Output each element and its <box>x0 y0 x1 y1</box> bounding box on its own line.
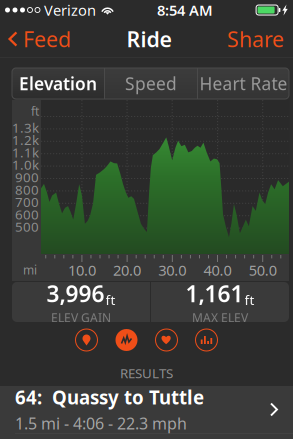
staticText: 600 <box>15 205 39 223</box>
staticText: RESULTS <box>120 364 173 382</box>
button[interactable]: 64: Quassy to Tuttle <box>0 386 293 439</box>
staticText: 800 <box>15 181 39 198</box>
staticText: Share <box>227 25 284 53</box>
staticText: 900 <box>15 168 39 186</box>
staticText: 1,161 <box>185 278 243 309</box>
button[interactable]: Heart rate <box>155 329 177 351</box>
button[interactable]: Elevation <box>115 329 137 351</box>
staticText: 50.0 <box>249 260 277 280</box>
staticText: Feed <box>23 25 71 53</box>
staticText: 500 <box>15 218 39 235</box>
button[interactable]: Share <box>227 18 293 60</box>
staticText: 30.0 <box>158 260 186 280</box>
staticText: 10.0 <box>68 260 96 280</box>
staticText: mi <box>23 262 37 278</box>
staticText: 3,996 <box>46 278 104 309</box>
staticText: ft <box>105 291 115 309</box>
staticText: 20.0 <box>113 260 141 280</box>
staticText: 40.0 <box>204 260 232 280</box>
staticText: Heart Rate <box>199 72 287 95</box>
staticText: 1.5 mi - 4:06 - 22.3 mph <box>15 413 187 434</box>
button[interactable]: Splits <box>195 329 217 351</box>
button[interactable]: Elevation <box>12 68 104 99</box>
staticText: Elevation <box>19 72 97 95</box>
staticText: 1.3k <box>12 119 39 136</box>
staticText: 700 <box>15 193 39 211</box>
staticText: 1.0k <box>12 156 39 173</box>
staticText: ft <box>244 291 254 309</box>
staticText: Speed <box>125 72 177 95</box>
staticText: 64: Quassy to Tuttle <box>15 385 204 410</box>
staticText: ELEV GAIN <box>51 310 111 325</box>
staticText: MAX ELEV <box>192 310 248 325</box>
button[interactable]: Map <box>75 329 97 351</box>
staticText: ft <box>31 103 39 119</box>
staticText: 8:54 AM <box>157 0 213 20</box>
button[interactable]: Speed <box>105 68 197 99</box>
staticText: Verizon <box>44 0 96 20</box>
staticText: Ride <box>126 25 171 53</box>
staticText: 1.2k <box>12 131 39 149</box>
button[interactable]: Feed <box>0 18 71 60</box>
button[interactable]: Heart Rate <box>198 68 289 99</box>
staticText: 1.1k <box>12 143 39 161</box>
